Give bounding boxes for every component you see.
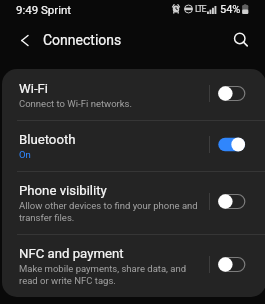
button[interactable]: Bluetooth (2, 120, 265, 171)
staticText: Wi-Fi (19, 81, 49, 96)
staticText: Make mobile payments, share data, and re… (19, 263, 204, 286)
staticText: Connect to Wi-Fi networks. (19, 98, 133, 109)
button[interactable]: Phone visibility switch (218, 190, 246, 212)
staticText: On (19, 149, 31, 160)
staticText: 9:49 Sprint (16, 3, 72, 16)
button[interactable]: NFC and payment switch (218, 253, 246, 275)
staticText: NFC and payment (19, 246, 124, 261)
button[interactable]: Phone visibility (2, 171, 265, 234)
staticText: 54% (220, 3, 241, 16)
button[interactable]: Search (227, 26, 255, 54)
staticText: Connections (43, 32, 122, 48)
button[interactable]: Wi-Fi (2, 69, 265, 120)
staticText: Allow other devices to find your phone a… (19, 200, 204, 223)
staticText: Bluetooth (19, 132, 76, 147)
button[interactable]: Navigate up (10, 26, 38, 54)
button[interactable]: Bluetooth switch (218, 133, 246, 155)
staticText: LTE (195, 4, 206, 15)
staticText: Phone visibility (19, 183, 107, 198)
button[interactable]: NFC and payment (2, 234, 265, 297)
button[interactable]: Wi-Fi switch (218, 82, 246, 104)
